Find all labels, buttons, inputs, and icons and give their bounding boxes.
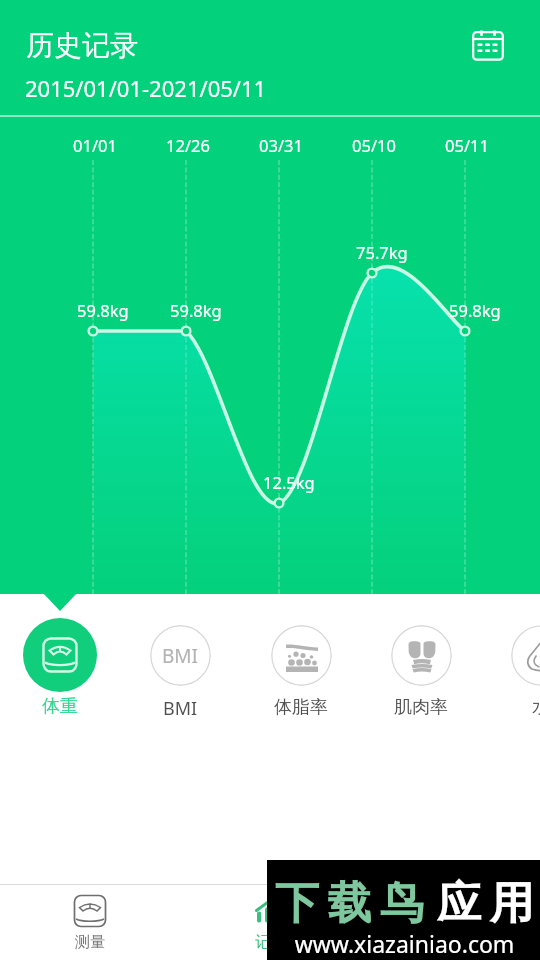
button[interactable]: 体脂率 <box>241 614 361 719</box>
button[interactable]: 水 <box>481 614 540 719</box>
button[interactable]: Calendar <box>462 20 514 72</box>
staticText: 应用 <box>433 876 538 931</box>
staticText: 59.8kg <box>449 299 501 321</box>
button[interactable]: 我的 <box>360 885 540 960</box>
staticText: 59.8kg <box>170 299 222 321</box>
staticText: 水 <box>532 696 540 719</box>
staticText: 2015/01/01-2021/05/11 <box>25 73 267 103</box>
staticText: 体重 <box>42 695 78 718</box>
staticText: 12.5kg <box>263 471 315 493</box>
staticText: BMI <box>162 643 199 669</box>
button[interactable]: 肌肉率 <box>361 614 481 719</box>
staticText: www.xiazainiao.com <box>268 928 540 959</box>
staticText: 03/31 <box>259 134 303 156</box>
button[interactable]: 体重 <box>0 614 120 718</box>
staticText: 05/11 <box>445 134 489 156</box>
staticText: 59.8kg <box>77 299 129 321</box>
staticText: 历史记录 <box>26 28 138 63</box>
staticText: 我的 <box>435 933 465 952</box>
button[interactable]: 测量 <box>0 885 180 960</box>
staticText: 肌肉率 <box>394 696 448 719</box>
staticText: 75.7kg <box>356 241 408 263</box>
staticText: BMI <box>163 696 198 721</box>
staticText: 05/10 <box>352 134 396 156</box>
staticText: 记录 <box>255 933 285 952</box>
button[interactable]: 记录 <box>180 885 360 960</box>
staticText: 01/01 <box>73 134 117 156</box>
button[interactable]: BMI <box>120 614 240 721</box>
staticText: 体脂率 <box>274 696 328 719</box>
staticText: 测量 <box>75 933 105 952</box>
staticText: 12/26 <box>166 134 210 156</box>
staticText: 下载鸟 <box>275 876 433 931</box>
